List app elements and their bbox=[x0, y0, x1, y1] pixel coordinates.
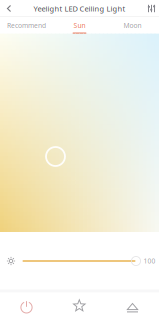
button[interactable]: Recommend bbox=[0, 17, 53, 34]
button[interactable]: Share bbox=[106, 293, 159, 320]
staticText: Sun bbox=[73, 21, 85, 30]
button[interactable]: Adjust brightness bbox=[144, 0, 159, 17]
button[interactable]: Sun bbox=[53, 17, 106, 34]
button[interactable]: Power bbox=[0, 293, 53, 320]
button[interactable]: Back bbox=[0, 0, 18, 17]
button[interactable]: Moon bbox=[106, 17, 159, 34]
staticText: Recommend bbox=[7, 21, 46, 30]
button[interactable]: Add to favourites bbox=[53, 293, 106, 320]
staticText: Moon bbox=[123, 21, 141, 30]
staticText: 100 bbox=[143, 256, 155, 266]
staticText: Yeelight LED Ceiling Light bbox=[33, 3, 125, 14]
